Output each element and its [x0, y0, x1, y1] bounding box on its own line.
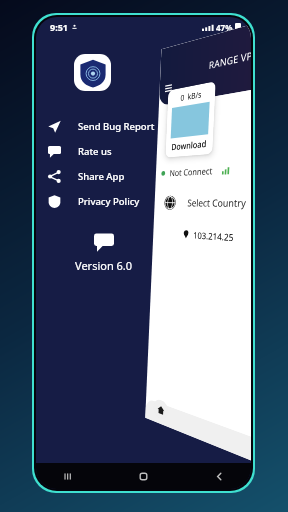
staticText: 0 kB/s — [180, 88, 202, 103]
staticText: 103.214.25 — [193, 229, 234, 243]
staticText: Not Connect — [169, 164, 213, 178]
staticText: Rate us — [78, 145, 112, 158]
staticText: 9:51 — [50, 21, 68, 33]
staticText: 47% — [216, 22, 233, 33]
staticText: RANGE VPN — [208, 46, 251, 72]
button[interactable]: Rate us — [36, 139, 158, 164]
staticText: Select Country — [187, 196, 247, 210]
button[interactable]: Back — [214, 471, 225, 482]
staticText: Download — [171, 137, 207, 152]
button[interactable]: Home — [138, 471, 149, 482]
button[interactable]: Home — [153, 397, 169, 422]
button[interactable]: Menu — [165, 83, 172, 93]
button[interactable]: 103.214.25 — [175, 223, 251, 254]
button[interactable]: Share App — [36, 164, 158, 189]
staticText: Share App — [78, 170, 125, 183]
button[interactable]: Select Country — [158, 186, 251, 219]
staticText: Version 6.0 — [75, 258, 133, 273]
staticText: Privacy Policy — [78, 195, 140, 208]
button[interactable]: Recents — [62, 471, 73, 482]
button[interactable]: Privacy Policy — [36, 189, 158, 214]
button[interactable]: Send Bug Report — [36, 114, 158, 139]
staticText: Send Bug Report — [78, 120, 155, 133]
